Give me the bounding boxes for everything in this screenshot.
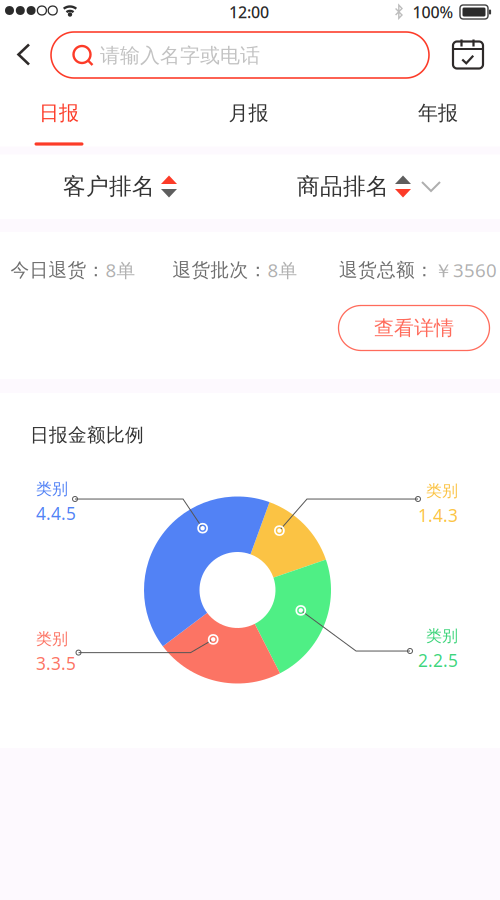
button[interactable]: 请输入名字或电话 [51, 32, 429, 78]
button[interactable]: More [413, 169, 449, 205]
staticText: 类别 [36, 629, 68, 649]
staticText: ￥3560 [434, 258, 497, 282]
staticText: 1.4.3 [418, 504, 458, 527]
staticText: 类别 [426, 626, 458, 646]
staticText: 日报金额比例 [30, 423, 144, 446]
button[interactable]: Calendar [445, 30, 491, 80]
button[interactable]: 客户排名 [63, 164, 177, 208]
button[interactable]: 商品排名 [297, 164, 411, 208]
staticText: 日报 [39, 101, 79, 125]
staticText: 今日退货： [10, 258, 105, 281]
staticText: 类别 [36, 479, 68, 499]
staticText: 查看详情 [374, 316, 454, 340]
staticText: 12:00 [229, 1, 269, 23]
button[interactable]: 查看详情 [338, 305, 489, 350]
staticText: 商品排名 [297, 173, 389, 200]
staticText: 退货总额： [339, 258, 434, 281]
staticText: 请输入名字或电话 [100, 43, 260, 68]
staticText: 2.2.5 [418, 649, 458, 672]
staticText: 客户排名 [63, 173, 155, 200]
staticText: 8单 [105, 258, 135, 282]
staticText: 退货批次： [172, 258, 267, 281]
staticText: 8单 [267, 258, 297, 282]
staticText: 4.4.5 [36, 502, 76, 525]
staticText: 月报 [228, 101, 268, 125]
button[interactable]: Back [2, 30, 46, 80]
button[interactable]: 年报 [379, 79, 497, 153]
staticText: 类别 [426, 481, 458, 501]
staticText: 年报 [418, 101, 458, 125]
staticText: 100% [412, 1, 453, 23]
staticText: 3.3.5 [36, 652, 76, 675]
button[interactable]: 日报 [0, 79, 118, 153]
button[interactable]: 月报 [189, 79, 307, 153]
